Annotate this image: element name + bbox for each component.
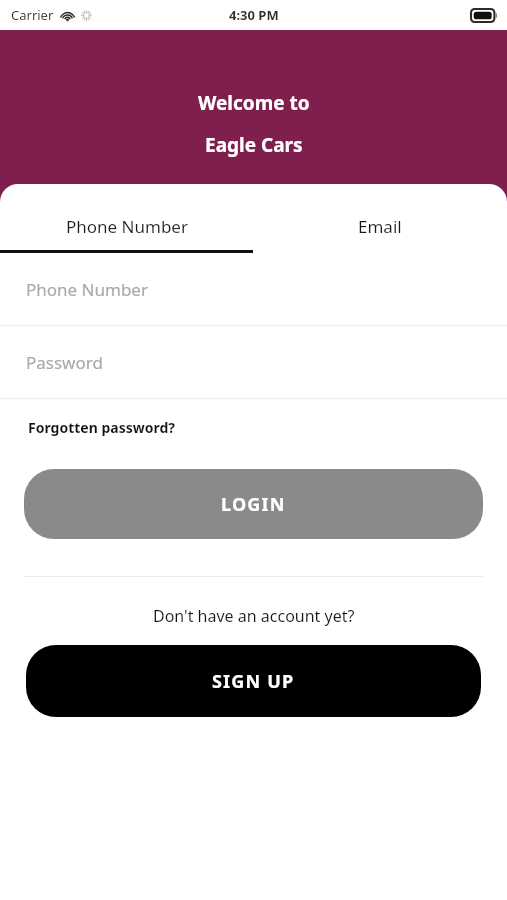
staticText: LOGIN — [221, 492, 286, 517]
staticText: Email — [358, 215, 402, 238]
staticText: Forgotten password? — [28, 418, 175, 437]
staticText: 4:30 PM — [229, 6, 279, 24]
staticText: Welcome to — [198, 90, 310, 116]
staticText: SIGN UP — [212, 669, 295, 694]
staticText: Carrier — [11, 6, 54, 24]
staticText: Eagle Cars — [205, 132, 303, 158]
staticText: Password — [26, 351, 103, 374]
button[interactable]: Phone Number — [0, 253, 507, 325]
button[interactable]: SIGN UP — [26, 645, 481, 717]
button[interactable]: Email — [253, 202, 507, 250]
button[interactable]: Password — [0, 326, 507, 398]
staticText: Phone Number — [26, 278, 148, 301]
staticText: Phone Number — [66, 215, 188, 238]
button[interactable]: Phone Number — [0, 202, 253, 250]
button[interactable]: Forgotten password? — [0, 399, 507, 456]
staticText: Don't have an account yet? — [153, 605, 355, 627]
button[interactable]: LOGIN — [24, 469, 483, 539]
